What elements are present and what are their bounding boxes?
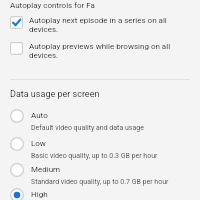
button[interactable]: Autoplay previews while browsing on all … — [0, 41, 200, 59]
staticText: Autoplay previews while browsing on all … — [29, 42, 179, 60]
staticText: High — [31, 190, 48, 199]
staticText: Default video quality and data usage — [31, 124, 144, 132]
staticText: Basic video quality, up to 0.3 GB per ho… — [31, 152, 158, 160]
staticText: Medium — [31, 165, 61, 174]
button[interactable]: Autoplay next episode in a series on all… — [0, 15, 200, 33]
button[interactable]: Low — [0, 139, 200, 160]
button[interactable]: Auto — [0, 111, 200, 132]
button[interactable]: Medium — [0, 165, 200, 186]
staticText: Autoplay controls for Fa — [10, 1, 95, 10]
button[interactable]: High — [0, 190, 200, 200]
staticText: Low — [31, 139, 46, 148]
staticText: Autoplay next episode in a series on all… — [29, 16, 179, 34]
staticText: Data usage per screen — [10, 89, 100, 100]
staticText: Auto — [31, 111, 48, 120]
staticText: Standard video quality, up to 0.7 GB per… — [31, 178, 169, 186]
